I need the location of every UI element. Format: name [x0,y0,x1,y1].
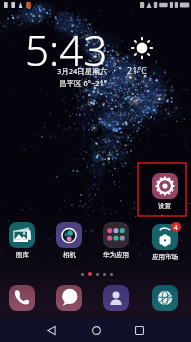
button[interactable]: 华为应用 [93,222,139,259]
staticText: 图库 [16,251,29,259]
staticText: 设置 [158,202,171,210]
button[interactable]: Recents [122,318,156,342]
staticText: 昌平区 6°~21° [59,78,108,88]
button[interactable]: Contacts [100,285,132,311]
button[interactable]: Browser [149,285,181,311]
staticText: 相机 [63,251,76,259]
button[interactable]: 4 [142,222,188,261]
button[interactable]: 图库 [0,222,45,259]
button[interactable]: 设置 [151,173,178,210]
staticText: 5:43 [25,21,108,78]
button[interactable]: Home [79,318,113,342]
button[interactable]: Back [34,318,68,342]
button[interactable]: Phone [6,285,38,311]
staticText: 21°C [127,64,147,76]
staticText: 3月24日星期六 [57,66,108,76]
button[interactable]: Messages [53,285,85,311]
staticText: 4 [174,223,178,232]
button[interactable]: 相机 [46,222,92,259]
staticText: 应用市场 [152,253,178,261]
staticText: 华为应用 [103,251,129,259]
